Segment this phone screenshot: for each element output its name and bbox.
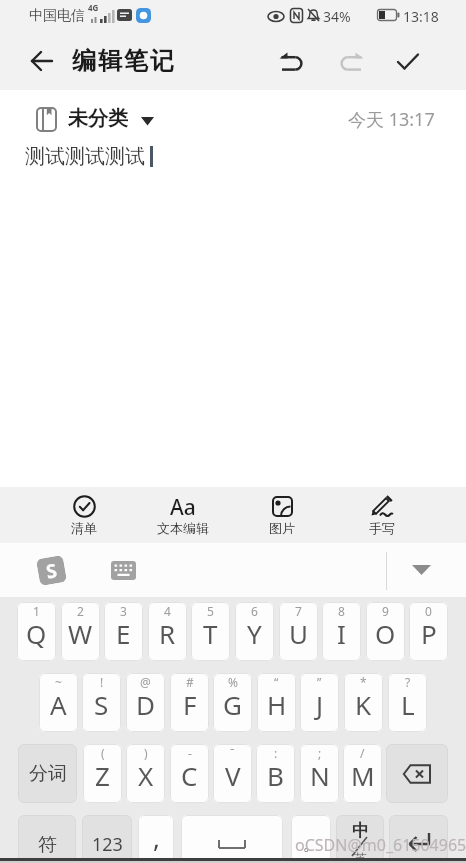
button[interactable]: 图片: [232, 487, 332, 543]
button[interactable]: 123: [82, 815, 132, 863]
button[interactable]: 0: [409, 602, 448, 661]
staticText: 6: [251, 603, 258, 619]
button[interactable]: @: [126, 673, 165, 732]
button[interactable]: [403, 557, 439, 583]
staticText: J: [316, 687, 324, 722]
staticText: L: [401, 687, 415, 722]
staticText: %: [228, 674, 238, 690]
staticText: ,: [153, 820, 160, 855]
button[interactable]: !: [82, 673, 121, 732]
staticText: 英: [354, 850, 367, 863]
staticText: (: [101, 745, 105, 761]
button[interactable]: [386, 744, 448, 803]
staticText: 4G: [88, 2, 99, 13]
button[interactable]: 5: [191, 602, 230, 661]
staticText: #: [186, 674, 194, 690]
button[interactable]: *: [344, 673, 383, 732]
staticText: C: [181, 758, 198, 793]
button[interactable]: 。: [291, 815, 331, 863]
staticText: 34%: [323, 7, 351, 26]
staticText: /: [360, 745, 365, 761]
staticText: 2: [77, 603, 84, 619]
button[interactable]: :: [256, 744, 295, 803]
staticText: 123: [92, 832, 123, 857]
staticText: Z: [95, 758, 110, 793]
staticText: @: [140, 674, 151, 690]
staticText: 手写: [369, 520, 395, 536]
button[interactable]: [389, 815, 448, 863]
staticText: ”: [317, 674, 322, 690]
staticText: 8: [338, 603, 345, 619]
staticText: 清单: [71, 520, 97, 536]
button[interactable]: [334, 44, 368, 78]
button[interactable]: ,: [138, 815, 174, 863]
button[interactable]: [274, 44, 308, 78]
staticText: 未分类: [68, 106, 128, 131]
staticText: 4: [164, 603, 171, 619]
button[interactable]: (: [83, 744, 122, 803]
button[interactable]: [181, 815, 283, 863]
button[interactable]: 9: [366, 602, 405, 661]
button[interactable]: ”: [300, 673, 339, 732]
staticText: W: [68, 616, 93, 651]
button[interactable]: ~: [39, 673, 78, 732]
staticText: 编辑笔记: [71, 46, 175, 76]
button[interactable]: 6: [235, 602, 274, 661]
button[interactable]: 3: [104, 602, 143, 661]
staticText: Aa: [170, 493, 196, 519]
button[interactable]: “: [257, 673, 296, 732]
staticText: 分词: [29, 762, 67, 786]
staticText: V: [225, 758, 241, 793]
staticText: Y: [247, 616, 262, 651]
button[interactable]: [391, 44, 425, 78]
staticText: 0: [425, 603, 432, 619]
staticText: :: [274, 745, 278, 761]
button[interactable]: /: [343, 744, 382, 803]
button[interactable]: 2: [61, 602, 100, 661]
button[interactable]: [24, 43, 60, 79]
button[interactable]: 中: [336, 815, 384, 863]
button[interactable]: ˉ: [213, 744, 252, 803]
button[interactable]: 1: [17, 602, 56, 661]
staticText: G: [223, 687, 242, 722]
button[interactable]: 手写: [332, 487, 432, 543]
staticText: ˉ: [230, 745, 235, 761]
staticText: S: [44, 557, 59, 585]
staticText: F: [183, 687, 197, 722]
staticText: 符: [38, 833, 57, 857]
staticText: R: [159, 616, 176, 651]
staticText: ~: [55, 674, 62, 690]
staticText: K: [355, 687, 372, 722]
staticText: 中国电信: [29, 7, 85, 25]
staticText: 文本编辑: [157, 520, 209, 536]
staticText: E: [116, 616, 131, 651]
button[interactable]: -: [170, 744, 209, 803]
staticText: 7: [295, 603, 302, 619]
staticText: -: [188, 745, 192, 761]
staticText: ;: [318, 745, 322, 761]
button[interactable]: [110, 559, 136, 581]
button[interactable]: [36, 107, 57, 132]
button[interactable]: ?: [388, 673, 427, 732]
staticText: !: [100, 674, 104, 690]
staticText: 图片: [269, 520, 295, 536]
button[interactable]: 4: [148, 602, 187, 661]
staticText: N: [310, 758, 330, 793]
staticText: ): [144, 745, 148, 761]
staticText: ?: [405, 674, 411, 690]
button[interactable]: #: [170, 673, 209, 732]
button[interactable]: S: [37, 556, 65, 584]
button[interactable]: ): [126, 744, 165, 803]
button[interactable]: 8: [322, 602, 361, 661]
staticText: 今天 13:17: [348, 107, 435, 132]
staticText: “: [274, 674, 279, 690]
staticText: M: [351, 758, 375, 793]
button[interactable]: 清单: [34, 487, 133, 543]
staticText: 。: [303, 834, 320, 855]
button[interactable]: 分词: [18, 744, 77, 803]
button[interactable]: 符: [18, 815, 76, 863]
button[interactable]: %: [213, 673, 252, 732]
button[interactable]: ;: [300, 744, 339, 803]
button[interactable]: Aa: [133, 487, 232, 543]
button[interactable]: 7: [279, 602, 318, 661]
